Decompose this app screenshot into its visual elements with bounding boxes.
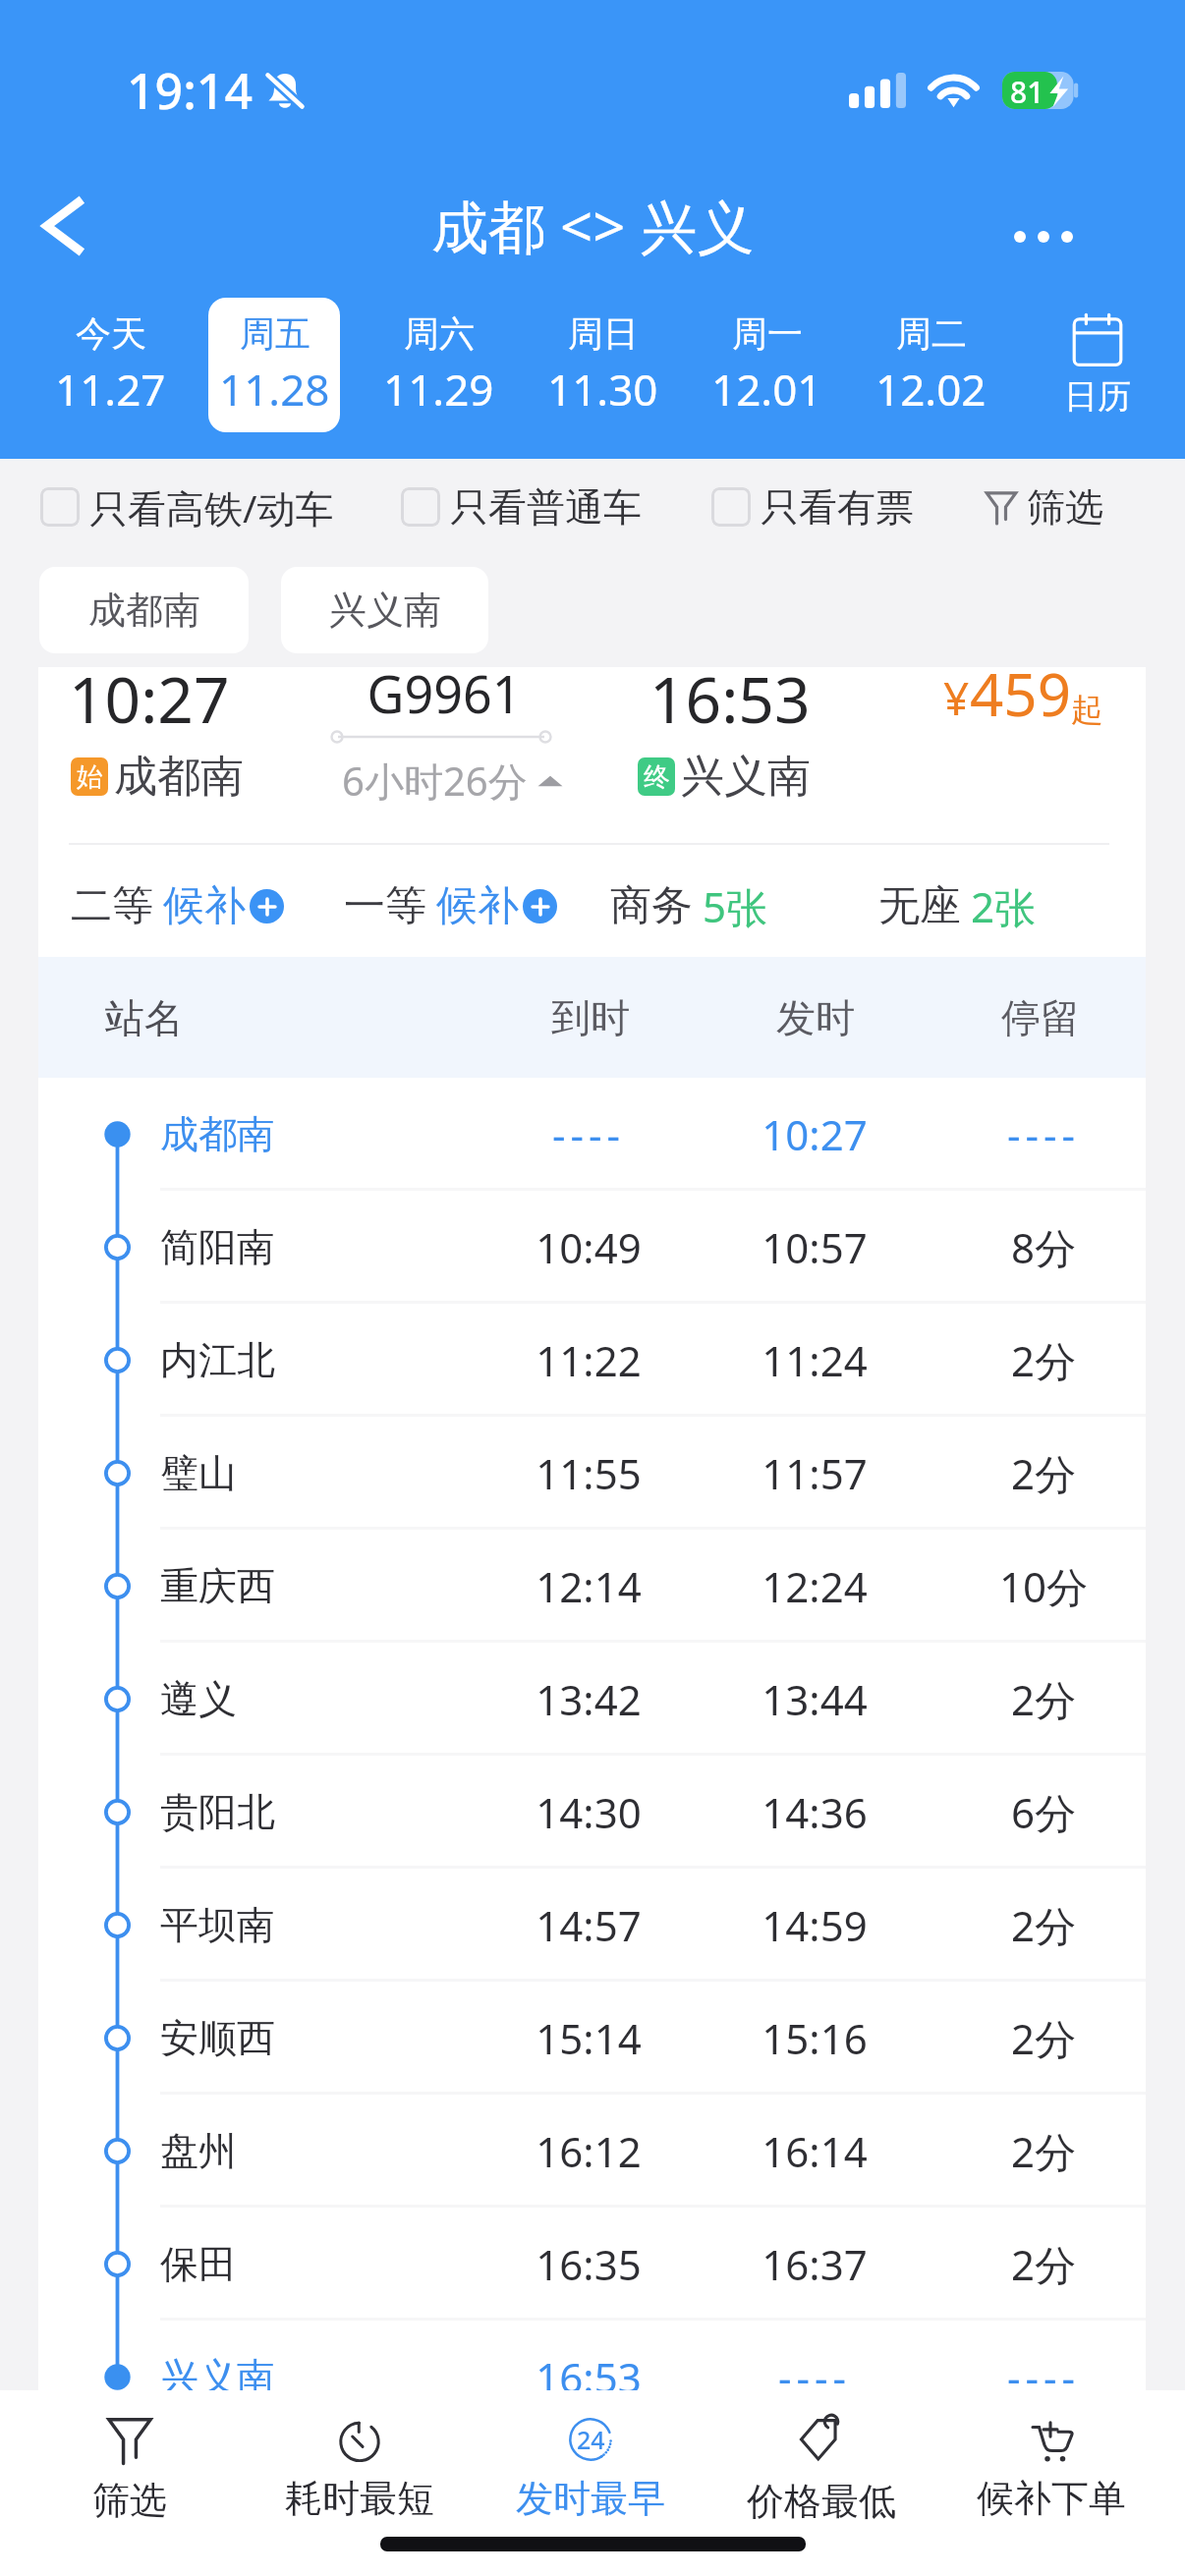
staticText: 11:57 (697, 1445, 932, 1501)
button[interactable]: 候补下单 (943, 2400, 1159, 2538)
staticText: 成都南 (160, 1110, 275, 1158)
staticText: 只看普通车 (450, 483, 642, 532)
staticText: 13:44 (697, 1671, 932, 1727)
button[interactable]: 成都南 (39, 567, 249, 653)
button[interactable]: 成都南 (38, 1078, 1146, 1191)
staticText: 安顺西 (160, 2014, 275, 2062)
staticText: ---- (697, 2349, 932, 2390)
button[interactable]: 兴义南 (38, 2321, 1146, 2390)
staticText: 停留 (923, 993, 1146, 1042)
staticText: 11.28 (219, 360, 330, 419)
button[interactable]: 无座 (878, 871, 1037, 940)
staticText: 11:24 (697, 1332, 932, 1388)
staticText: 贵阳北 (160, 1788, 275, 1836)
button[interactable]: ¥ (943, 653, 1103, 734)
button[interactable]: 一等 (344, 871, 557, 940)
staticText: ---- (926, 1106, 1146, 1162)
staticText: 2分 (926, 2236, 1146, 2292)
staticText: 2分 (926, 1445, 1146, 1501)
staticText: 璧山 (160, 1449, 237, 1497)
staticText: 2分 (926, 1332, 1146, 1388)
button[interactable]: 周六 (372, 298, 504, 432)
button[interactable]: 日历 (1019, 298, 1176, 432)
button[interactable]: 商务 (610, 871, 768, 940)
button[interactable]: 24 (482, 2400, 699, 2538)
staticText: 终 (644, 760, 670, 794)
staticText: 兴义南 (329, 587, 441, 634)
staticText: 到时 (473, 993, 708, 1042)
staticText: 14:59 (697, 1897, 932, 1953)
staticText: 发时最早 (516, 2475, 665, 2522)
button[interactable]: 价格最低 (713, 2400, 930, 2538)
staticText: 只看高铁/动车 (89, 481, 334, 533)
staticText: ---- (471, 1106, 706, 1162)
staticText: 平坝南 (160, 1901, 275, 1949)
staticText: 起 (1071, 690, 1103, 731)
staticText: 一等 (344, 880, 426, 932)
staticText: 10:27 (697, 1106, 932, 1162)
button[interactable]: 璧山 (38, 1417, 1146, 1530)
button[interactable]: 只看普通车 (401, 473, 642, 541)
staticText: 成都南 (114, 750, 244, 804)
button[interactable]: 重庆西 (38, 1530, 1146, 1643)
staticText: 16:53 (649, 656, 811, 742)
button[interactable]: 筛选 (986, 473, 1103, 541)
button[interactable]: 保田 (38, 2208, 1146, 2321)
staticText: 12.01 (711, 360, 822, 419)
button[interactable]: 周日 (536, 298, 668, 432)
button[interactable]: 贵阳北 (38, 1756, 1146, 1869)
staticText: 周二 (896, 311, 967, 356)
staticText: 16:35 (471, 2236, 706, 2292)
staticText: 81 (1010, 72, 1044, 109)
staticText: 5张 (703, 878, 768, 934)
staticText: 19:14 (127, 57, 253, 124)
staticText: 候补 (436, 880, 519, 932)
staticText: 16:14 (697, 2123, 932, 2179)
staticText: 16:53 (471, 2349, 706, 2390)
staticText: 价格最低 (747, 2478, 896, 2525)
button[interactable]: Back (27, 191, 97, 261)
staticText: 13:42 (471, 1671, 706, 1727)
button[interactable]: 兴义南 (281, 567, 488, 653)
button[interactable]: 耗时最短 (252, 2400, 468, 2538)
staticText: 遵义 (160, 1675, 237, 1723)
staticText: 盘州 (160, 2127, 237, 2175)
staticText: 无座 (878, 880, 961, 932)
staticText: 15:14 (471, 2010, 706, 2066)
button[interactable]: 内江北 (38, 1304, 1146, 1417)
button[interactable]: 简阳南 (38, 1191, 1146, 1304)
staticText: 11:22 (471, 1332, 706, 1388)
staticText: 简阳南 (160, 1223, 275, 1271)
staticText: G9961 (326, 658, 562, 728)
staticText: 10:27 (69, 656, 230, 742)
staticText: 周一 (732, 311, 803, 356)
button[interactable]: 只看高铁/动车 (40, 473, 334, 541)
staticText: 2分 (926, 2010, 1146, 2066)
button[interactable]: 只看有票 (711, 473, 914, 541)
staticText: 14:36 (697, 1784, 932, 1840)
button[interactable]: 二等 (71, 871, 284, 940)
staticText: 16:37 (697, 2236, 932, 2292)
staticText: 11.27 (55, 360, 166, 419)
staticText: ---- (926, 2349, 1146, 2390)
button[interactable]: 筛选 (22, 2400, 238, 2538)
button[interactable]: 周二 (865, 298, 996, 432)
button[interactable]: 平坝南 (38, 1869, 1146, 1982)
button[interactable]: 周一 (701, 298, 832, 432)
staticText: 2张 (971, 878, 1037, 934)
staticText: 日历 (1064, 375, 1131, 418)
button[interactable]: 盘州 (38, 2095, 1146, 2208)
staticText: 11.30 (547, 360, 658, 419)
button[interactable]: 遵义 (38, 1643, 1146, 1756)
staticText: 16:12 (471, 2123, 706, 2179)
button[interactable]: 周五 (208, 298, 340, 432)
staticText: 兴义南 (681, 750, 811, 804)
staticText: 2分 (926, 1671, 1146, 1727)
button[interactable]: 安顺西 (38, 1982, 1146, 2095)
staticText: 耗时最短 (285, 2475, 434, 2522)
staticText: 2分 (926, 2123, 1146, 2179)
staticText: 商务 (610, 880, 693, 932)
staticText: 10分 (926, 1558, 1146, 1614)
button[interactable]: More options (1005, 191, 1082, 283)
button[interactable]: 今天 (44, 298, 176, 432)
